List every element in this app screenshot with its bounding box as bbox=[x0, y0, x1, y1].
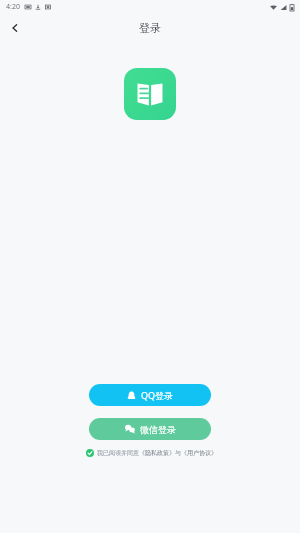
staticText: QQ登录 bbox=[141, 389, 174, 401]
staticText: 与 bbox=[175, 449, 181, 457]
button[interactable]: 微信登录 bbox=[89, 418, 211, 440]
button[interactable]: 《用户协议》 bbox=[181, 449, 217, 457]
button[interactable]: QQ登录 bbox=[89, 384, 211, 406]
button[interactable]: Agree checkbox bbox=[84, 447, 96, 459]
staticText: 微信登录 bbox=[140, 424, 176, 435]
staticText: 登录 bbox=[139, 21, 161, 35]
staticText: 我已阅读并同意 bbox=[97, 449, 139, 457]
staticText: 《隐私政策》 bbox=[139, 449, 175, 457]
button[interactable]: Back bbox=[0, 14, 30, 42]
button[interactable]: 《隐私政策》 bbox=[139, 449, 175, 457]
staticText: 4:20 bbox=[6, 2, 20, 12]
staticText: 《用户协议》 bbox=[181, 449, 217, 457]
